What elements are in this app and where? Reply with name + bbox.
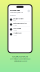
- staticText: Write weekly notes: [13, 23, 27, 24]
- button[interactable]: Write weekly notes: [10, 22, 30, 27]
- staticText: Everything you need for today,: [9, 58, 30, 60]
- staticText: Good morning: [10, 10, 20, 11]
- staticText: Lunch walk: [13, 27, 21, 29]
- staticText: nothing that you don't.: [13, 60, 26, 62]
- button[interactable]: Lunch walk: [10, 27, 30, 32]
- staticText: UP NEXT: [10, 14, 16, 16]
- staticText: A CALM PLACE TO PLAN: [12, 56, 28, 58]
- staticText: Design review: [13, 18, 23, 19]
- button[interactable]: Design review: [10, 17, 30, 22]
- staticText: 15:00: [13, 34, 17, 36]
- staticText: 12:45: [13, 29, 17, 31]
- button[interactable]: 1:1 with Sam: [10, 32, 30, 37]
- staticText: 11:00: [13, 25, 17, 26]
- staticText: 1:1 with Sam: [13, 32, 21, 34]
- staticText: 9:30: [13, 20, 16, 21]
- staticText: Tuesday, 4 March: [10, 12, 23, 13]
